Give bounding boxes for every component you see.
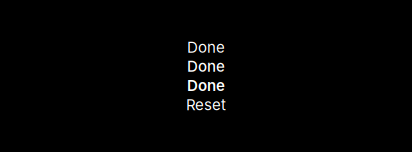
staticText: Reset	[186, 96, 226, 114]
staticText: Done	[187, 76, 225, 95]
staticText: Done	[187, 57, 225, 75]
staticText: Done	[187, 38, 225, 56]
